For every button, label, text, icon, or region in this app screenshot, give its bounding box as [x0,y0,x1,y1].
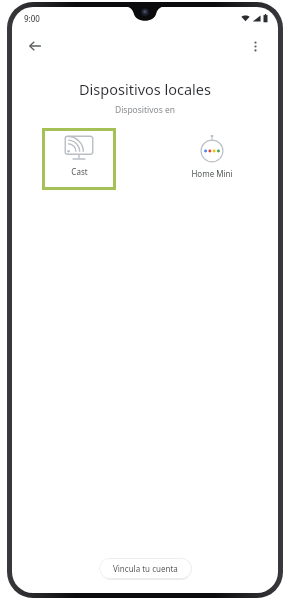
staticText: Cast [71,166,88,177]
staticText: Dispositivos en [12,104,278,116]
staticText: 9:00 [24,13,40,24]
button[interactable]: Home Mini [175,128,249,190]
button[interactable]: Vincula tu cuenta [99,558,192,579]
button[interactable]: Cast [42,128,116,190]
staticText: Home Mini [191,168,233,179]
button[interactable]: Back [22,33,48,59]
staticText: Vincula tu cuenta [113,563,178,574]
button[interactable]: More options [242,33,268,59]
staticText: Dispositivos locales [12,79,278,99]
